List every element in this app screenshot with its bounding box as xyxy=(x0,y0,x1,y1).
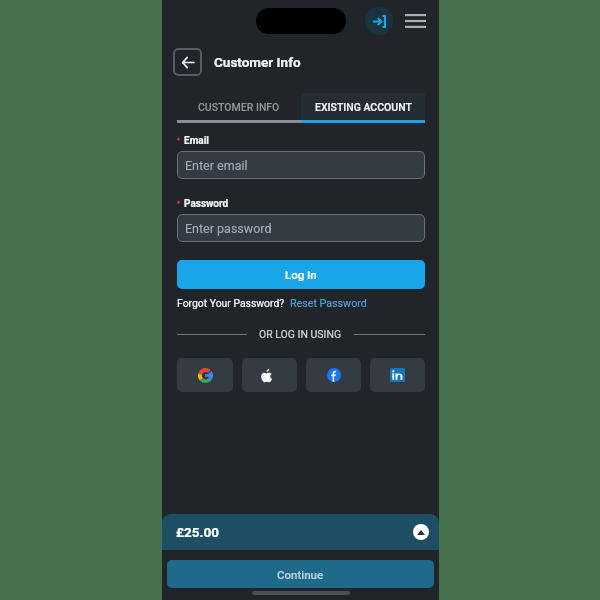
staticText: Log In xyxy=(285,268,317,281)
button[interactable]: Continue xyxy=(167,560,434,588)
staticText: CUSTOMER INFO xyxy=(198,101,280,113)
staticText: Reset Password xyxy=(290,297,367,310)
staticText: £25.00 xyxy=(176,524,219,540)
button[interactable]: Sign in with Google xyxy=(177,358,233,392)
button[interactable]: Log In xyxy=(177,260,425,289)
button[interactable]: £25.00 xyxy=(162,514,439,550)
staticText: Password xyxy=(184,198,229,210)
button[interactable]: EXISTING ACCOUNT xyxy=(301,93,425,123)
button[interactable]: CUSTOMER INFO xyxy=(177,93,301,123)
button[interactable]: Enter password xyxy=(177,214,425,242)
button[interactable]: Sign in with Facebook xyxy=(306,358,361,392)
button[interactable]: Sign in with Apple xyxy=(242,358,297,392)
button[interactable]: Back xyxy=(173,48,202,76)
button[interactable]: Enter email xyxy=(177,151,425,179)
staticText: EXISTING ACCOUNT xyxy=(315,101,412,113)
button[interactable]: Menu xyxy=(401,8,429,34)
staticText: Forgot Your Password? xyxy=(177,297,285,309)
staticText: Customer Info xyxy=(214,54,301,70)
button[interactable]: Reset Password xyxy=(290,297,367,310)
staticText: Email xyxy=(184,135,209,147)
staticText: Enter password xyxy=(185,221,272,236)
button[interactable]: Sign in with LinkedIn xyxy=(370,358,425,392)
staticText: Enter email xyxy=(185,158,248,173)
staticText: OR LOG IN USING xyxy=(259,328,342,340)
staticText: Continue xyxy=(277,568,324,581)
button[interactable]: Log in xyxy=(365,7,393,35)
